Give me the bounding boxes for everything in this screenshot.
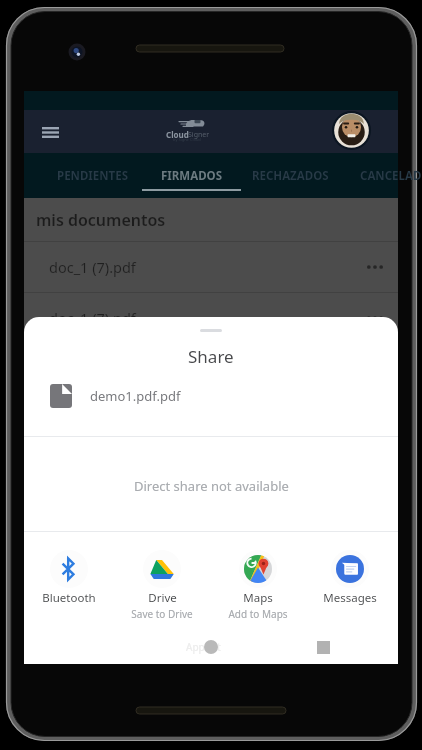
button[interactable]: RECHAZADOS — [241, 153, 340, 198]
staticText: Signer — [188, 130, 210, 140]
staticText: Save to Drive — [131, 607, 193, 621]
staticText: PENDIENTES — [57, 168, 129, 184]
staticText: Bluetooth — [42, 590, 96, 606]
button[interactable]: Maps — [213, 550, 303, 622]
staticText: Cloud — [166, 129, 189, 140]
staticText: Maps — [243, 590, 273, 606]
staticText: doc_1 (7).pdf — [49, 257, 136, 277]
staticText: doc_1 (7).pdf — [49, 308, 136, 328]
button[interactable]: Profile — [332, 111, 371, 150]
button[interactable]: demo1.pdf.pdf — [24, 377, 398, 414]
staticText: RECHAZADOS — [252, 168, 329, 184]
button[interactable]: doc_1 (7).pdf — [24, 293, 398, 343]
staticText: Messages — [323, 590, 377, 606]
staticText: Add to Maps — [228, 607, 288, 621]
button[interactable]: More options — [362, 254, 388, 280]
staticText: Drive — [148, 590, 177, 606]
staticText: Direct share not available — [134, 477, 289, 495]
button[interactable]: Messages — [305, 550, 395, 622]
staticText: demo1.pdf.pdf — [90, 387, 181, 405]
button[interactable]: doc_1 (7).pdf — [24, 242, 398, 292]
button[interactable]: More options — [362, 305, 388, 331]
staticText: mis documentos — [36, 209, 166, 231]
staticText: App list — [186, 640, 221, 654]
button[interactable]: CANCELADOS — [360, 153, 422, 198]
button[interactable]: Open navigation menu — [32, 114, 68, 150]
button[interactable]: Bluetooth — [24, 550, 114, 622]
staticText: by Signe Cloud — [173, 137, 201, 142]
staticText: Share — [188, 345, 234, 368]
button[interactable]: PENDIENTES — [43, 153, 142, 198]
button[interactable]: FIRMADOS — [142, 153, 241, 198]
staticText: CANCELADOS — [360, 168, 422, 184]
button[interactable]: Drive — [117, 550, 207, 622]
staticText: FIRMADOS — [161, 168, 222, 184]
